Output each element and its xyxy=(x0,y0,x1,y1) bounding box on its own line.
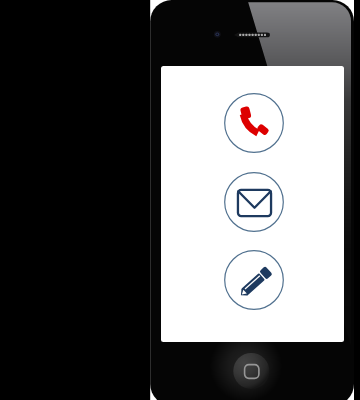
button[interactable]: Email xyxy=(224,172,284,232)
button[interactable]: Call xyxy=(224,93,284,153)
button[interactable]: Edit xyxy=(224,250,284,310)
